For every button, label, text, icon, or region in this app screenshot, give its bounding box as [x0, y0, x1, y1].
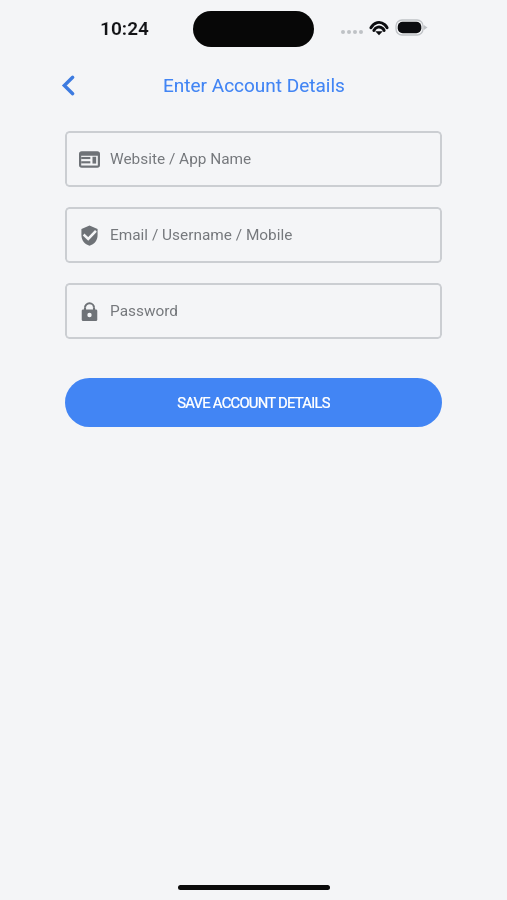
staticText: Enter Account Details	[163, 74, 345, 96]
staticText: Password	[110, 302, 178, 320]
button[interactable]: SAVE ACCOUNT DETAILS	[65, 378, 442, 427]
staticText: Email / Username / Mobile	[110, 226, 293, 244]
button[interactable]: Email / Username / Mobile	[65, 207, 442, 263]
button[interactable]: Website / App Name	[65, 131, 442, 187]
button[interactable]: Password	[65, 283, 442, 339]
staticText: Website / App Name	[110, 150, 252, 168]
staticText: 10:24	[100, 17, 149, 39]
button[interactable]: Back	[51, 68, 85, 102]
staticText: SAVE ACCOUNT DETAILS	[177, 394, 330, 411]
